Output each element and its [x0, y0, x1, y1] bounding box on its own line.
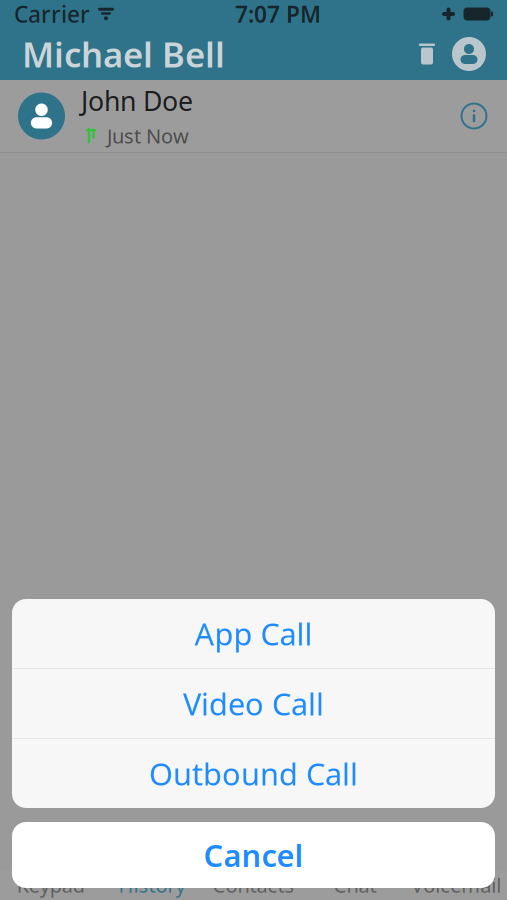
- staticText: John Doe: [81, 83, 193, 118]
- button[interactable]: Voicemail: [406, 870, 507, 900]
- staticText: Video Call: [183, 683, 324, 724]
- button[interactable]: Contacts: [203, 870, 304, 900]
- staticText: 7:07 PM: [235, 0, 321, 29]
- staticText: Keypad: [17, 872, 85, 898]
- staticText: Voicemail: [411, 872, 501, 898]
- staticText: Carrier: [14, 0, 90, 29]
- staticText: App Call: [194, 613, 312, 654]
- button[interactable]: Chat: [304, 870, 406, 900]
- staticText: Cancel: [203, 835, 303, 875]
- button[interactable]: Profile: [447, 32, 491, 76]
- button[interactable]: Outbound Call: [12, 739, 495, 808]
- button[interactable]: Cancel: [12, 822, 495, 888]
- staticText: Michael Bell: [22, 31, 225, 77]
- button[interactable]: Keypad: [0, 870, 101, 900]
- button[interactable]: History: [101, 870, 203, 900]
- staticText: Outbound Call: [149, 753, 358, 794]
- staticText: History: [119, 872, 186, 898]
- staticText: Contacts: [212, 872, 294, 898]
- staticText: Chat: [333, 872, 376, 898]
- button[interactable]: Delete: [407, 32, 447, 76]
- staticText: Just Now: [107, 122, 189, 149]
- button[interactable]: Video Call: [12, 669, 495, 738]
- button[interactable]: App Call: [12, 599, 495, 668]
- button[interactable]: John Doe: [0, 80, 507, 153]
